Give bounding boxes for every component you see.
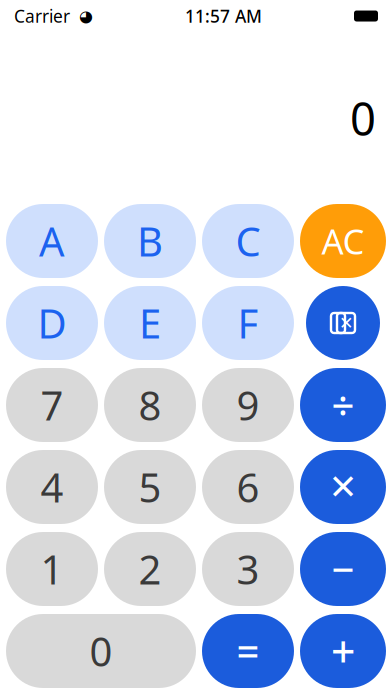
staticText: 0 xyxy=(89,624,112,677)
staticText: AC xyxy=(321,218,364,264)
staticText: 5 xyxy=(138,460,161,513)
staticText: 4 xyxy=(40,460,63,513)
button[interactable]: 6 xyxy=(202,450,294,524)
button[interactable]: + xyxy=(300,614,386,688)
button[interactable]: 8 xyxy=(104,368,196,442)
staticText: 3 xyxy=(236,542,259,595)
staticText: E xyxy=(139,296,161,349)
staticText: + xyxy=(331,623,355,679)
button[interactable]: B xyxy=(104,204,196,278)
button[interactable]: − xyxy=(300,532,386,606)
button[interactable]: ✕ xyxy=(300,450,386,524)
staticText: 8 xyxy=(138,378,161,431)
staticText: B xyxy=(137,214,163,267)
button[interactable]: 0 xyxy=(6,614,196,688)
staticText: ✕ xyxy=(328,467,357,507)
staticText: ✕ xyxy=(339,313,354,333)
staticText: = xyxy=(236,624,259,677)
button[interactable]: 5 xyxy=(104,450,196,524)
button[interactable]: F xyxy=(202,286,294,360)
button[interactable]: 7 xyxy=(6,368,98,442)
staticText: − xyxy=(331,542,354,595)
staticText: 11:57 AM xyxy=(185,4,262,27)
button[interactable]: C xyxy=(202,204,294,278)
staticText: C xyxy=(235,214,260,267)
staticText: A xyxy=(39,214,65,267)
button[interactable]: AC xyxy=(300,204,386,278)
staticText: 1 xyxy=(40,542,63,595)
button[interactable]: D xyxy=(6,286,98,360)
button[interactable]: = xyxy=(202,614,294,688)
button[interactable]: 9 xyxy=(202,368,294,442)
button[interactable]: Delete xyxy=(300,286,386,360)
button[interactable]: 4 xyxy=(6,450,98,524)
staticText: 0 xyxy=(350,88,376,148)
button[interactable]: 3 xyxy=(202,532,294,606)
staticText: Carrier xyxy=(14,4,70,27)
staticText: 9 xyxy=(236,378,259,431)
staticText: 7 xyxy=(40,378,63,431)
button[interactable]: 1 xyxy=(6,532,98,606)
staticText: ÷ xyxy=(331,378,354,431)
button[interactable]: A xyxy=(6,204,98,278)
staticText: D xyxy=(37,296,66,349)
button[interactable]: 2 xyxy=(104,532,196,606)
staticText: 6 xyxy=(236,460,259,513)
staticText: F xyxy=(237,296,258,349)
staticText: 2 xyxy=(138,542,161,595)
button[interactable]: ÷ xyxy=(300,368,386,442)
button[interactable]: E xyxy=(104,286,196,360)
staticText: ◕ xyxy=(73,7,93,25)
